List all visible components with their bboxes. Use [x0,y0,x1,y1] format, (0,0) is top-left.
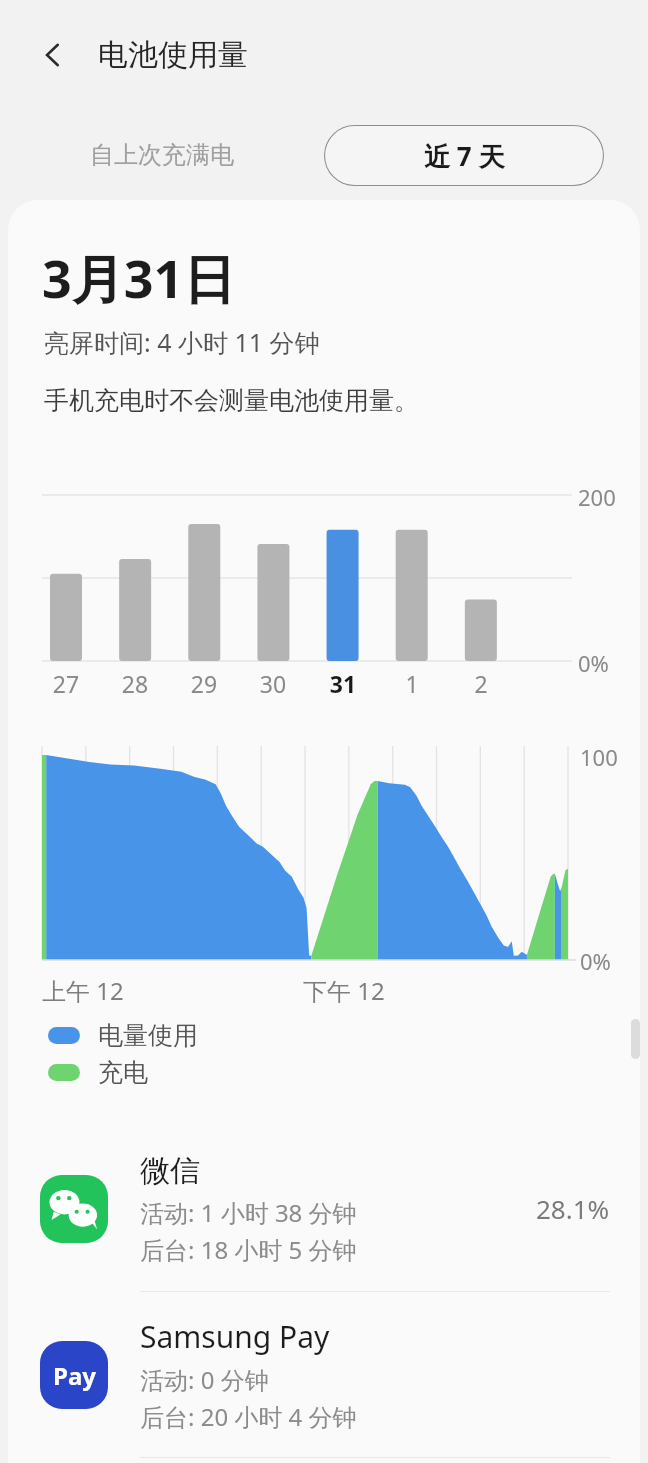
staticText: 100 [580,742,618,772]
staticText: 后台: 20 小时 4 分钟 [140,1400,357,1433]
staticText: Samsung Pay [140,1316,330,1357]
staticText: 近 7 天 [424,138,505,174]
staticText: 0% [580,946,611,976]
staticText: 电量使用 [98,1020,198,1051]
staticText: 28 [113,668,157,699]
staticText: 31 [321,668,365,699]
staticText: 29 [182,668,226,699]
staticText: 活动: 1 小时 38 分钟 [140,1196,357,1229]
button[interactable]: Back [22,24,84,86]
staticText: 3月31日 [42,242,236,313]
button[interactable]: Pay [8,1292,640,1457]
button[interactable]: 自上次充满电 [78,130,246,180]
staticText: 2 [459,668,503,699]
staticText: 自上次充满电 [90,140,234,170]
staticText: 1 [390,668,434,699]
staticText: 亮屏时间: 4 小时 11 分钟 [44,325,320,359]
staticText: 28.1% [536,1191,610,1226]
staticText: 上午 12 [42,974,124,1007]
staticText: 200 [578,482,616,512]
staticText: 0% [578,648,609,678]
staticText: 下午 12 [303,974,385,1007]
staticText: 后台: 18 小时 5 分钟 [140,1233,357,1266]
staticText: 充电 [98,1057,148,1088]
staticText: 27 [44,668,88,699]
button[interactable]: 微信 [8,1126,640,1291]
staticText: 活动: 0 分钟 [140,1363,269,1396]
staticText: Pay [53,1359,96,1392]
button[interactable]: 近 7 天 [324,125,604,186]
staticText: 手机充电时不会测量电池使用量。 [44,385,419,416]
staticText: 电池使用量 [98,36,248,74]
staticText: 微信 [140,1152,200,1190]
staticText: 30 [251,668,295,699]
